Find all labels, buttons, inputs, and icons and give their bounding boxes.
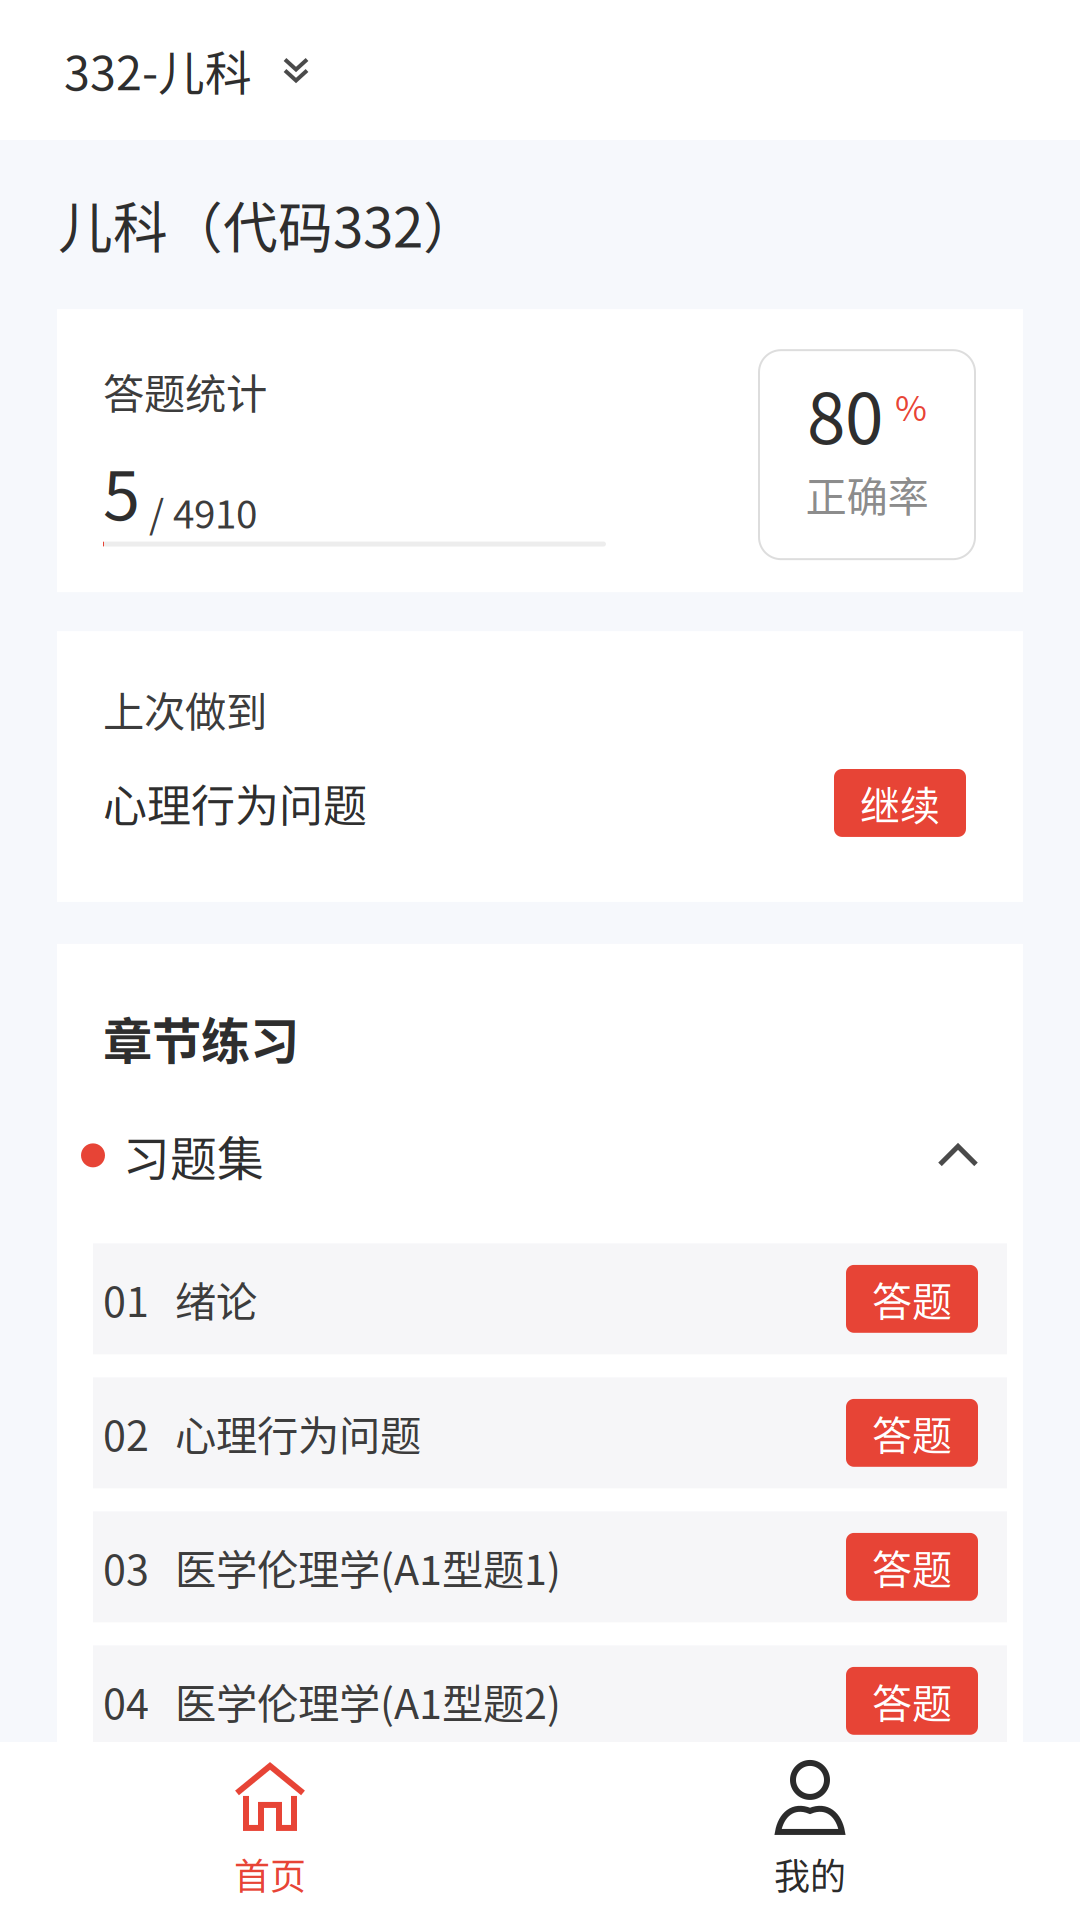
staticText: 绪论 — [175, 1269, 257, 1329]
button[interactable]: 05 — [93, 1779, 1007, 1890]
staticText: 正确率 — [805, 464, 928, 524]
staticText: 01 — [103, 1269, 149, 1329]
staticText: 332-儿科 — [64, 36, 252, 104]
button[interactable]: 04 — [93, 1645, 1007, 1756]
staticText: 心理行为问题 — [103, 771, 367, 835]
button[interactable]: 习题集 — [57, 1073, 1023, 1216]
staticText: 首页 — [234, 1848, 306, 1900]
staticText: 答题 — [872, 1538, 952, 1596]
staticText: 儿科（代码332） — [58, 184, 478, 263]
staticText: 章节练习 — [103, 1002, 299, 1073]
staticText: / 4910 — [140, 484, 257, 540]
staticText: 我的 — [774, 1848, 846, 1900]
staticText: 答题 — [872, 1404, 952, 1462]
button[interactable]: 01 — [93, 1243, 1007, 1354]
staticText: 医学伦理学(A1型题1) — [175, 1537, 561, 1597]
staticText: 继续 — [860, 774, 940, 832]
staticText: 答题统计 — [103, 361, 267, 421]
staticText: 03 — [103, 1537, 149, 1597]
staticText: 心理行为问题 — [175, 1403, 421, 1463]
staticText: 上次做到 — [103, 679, 267, 739]
staticText: 医学伦理学(A1型题3) — [175, 1805, 561, 1865]
staticText: % — [895, 381, 927, 431]
button[interactable]: 我的 — [540, 1742, 1080, 1920]
staticText: 医学伦理学(A1型题2) — [175, 1671, 561, 1731]
button[interactable]: 03 — [93, 1511, 1007, 1622]
staticText: 答题 — [872, 1672, 952, 1730]
staticText: 5 — [103, 443, 140, 539]
staticText: 04 — [103, 1671, 149, 1731]
staticText: 答题 — [872, 1270, 952, 1328]
button[interactable]: 首页 — [0, 1742, 540, 1920]
staticText: 80 — [807, 363, 883, 464]
button[interactable]: 02 — [93, 1377, 1007, 1488]
staticText: 02 — [103, 1403, 149, 1463]
button[interactable]: 332-儿科 — [0, 0, 1080, 140]
staticText: 习题集 — [123, 1122, 264, 1189]
button[interactable]: 继续 — [834, 769, 966, 837]
